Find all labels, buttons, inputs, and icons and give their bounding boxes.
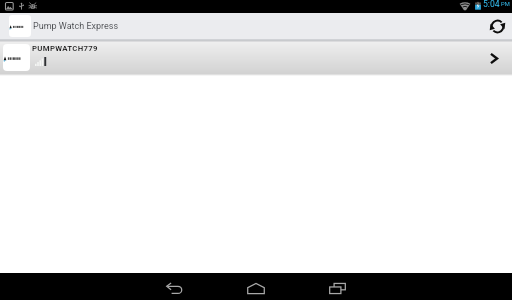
button[interactable]: Refresh [482,13,512,39]
button[interactable]: Pump Watch Express [0,13,125,39]
staticText: PM [501,1,510,8]
button[interactable]: Recent apps [296,275,378,300]
staticText: 5:04 [483,0,500,9]
staticText: Pump Watch Express [33,21,119,32]
button[interactable]: Back [134,275,215,300]
button[interactable]: Home [215,275,296,300]
staticText: PUMPWATCH779 [32,44,98,53]
button[interactable]: PUMPWATCH779 [0,42,512,74]
